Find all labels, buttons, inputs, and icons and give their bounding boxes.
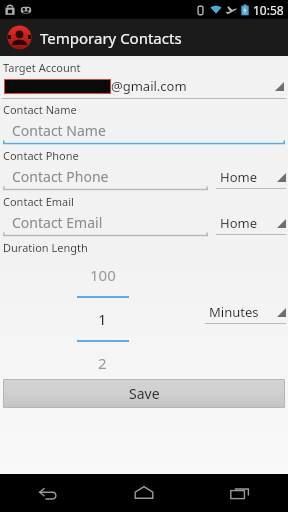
staticText: 10:58 [253, 2, 284, 18]
staticText: Target Account [3, 60, 81, 75]
button[interactable]: Recent apps [192, 474, 288, 512]
staticText: Contact Email [12, 213, 103, 232]
staticText: Contact Phone [12, 167, 109, 186]
staticText: Contact Phone [3, 148, 79, 163]
button[interactable]: Home [96, 474, 192, 512]
staticText: Duration Length [3, 240, 88, 255]
staticText: @gmail.com [111, 77, 187, 95]
button[interactable]: Home [216, 214, 288, 235]
other: Open dropdown [275, 82, 284, 91]
staticText: Home [220, 214, 257, 232]
other: Open dropdown [277, 219, 286, 228]
staticText: 100 [90, 265, 116, 285]
other: Open dropdown [277, 173, 286, 182]
button[interactable]: Back [0, 474, 96, 512]
staticText: Contact Email [3, 194, 74, 209]
button[interactable]: Contact Email [0, 211, 212, 237]
staticText: Contact Name [12, 121, 106, 140]
staticText: Contact Name [3, 102, 77, 117]
staticText: Save [129, 384, 160, 403]
button[interactable]: Minutes [205, 303, 288, 324]
button[interactable]: Temporary Contacts [0, 25, 190, 50]
button[interactable]: Contact Name [0, 119, 288, 145]
staticText: 2 [98, 353, 107, 369]
button[interactable]: Contact Phone [0, 165, 212, 191]
staticText: 1 [98, 309, 107, 329]
button[interactable]: Home [216, 168, 288, 189]
staticText: Temporary Contacts [40, 28, 182, 48]
staticText: Home [220, 168, 257, 186]
other: Open dropdown [277, 308, 286, 317]
staticText: Minutes [209, 303, 259, 321]
button[interactable]: @gmail.com [0, 77, 288, 95]
button[interactable]: Save [3, 379, 285, 408]
button[interactable]: 100 [0, 257, 205, 369]
